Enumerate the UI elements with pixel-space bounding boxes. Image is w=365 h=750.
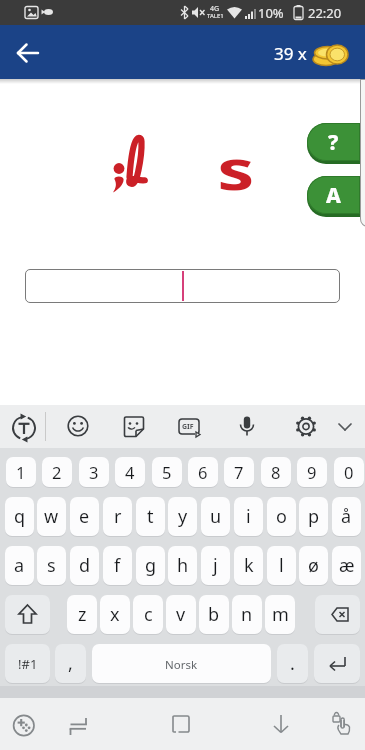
button[interactable]: 4 <box>115 457 145 487</box>
staticText: GIF <box>182 422 194 432</box>
button[interactable] <box>4 28 52 76</box>
button[interactable]: q <box>5 497 34 536</box>
button[interactable]: 6 <box>188 457 218 487</box>
button[interactable]: r <box>103 497 132 536</box>
staticText: 9 <box>307 461 317 483</box>
button[interactable]: å <box>332 497 361 536</box>
staticText: j <box>213 553 218 578</box>
button[interactable] <box>331 412 359 440</box>
staticText: 39 x <box>274 42 307 65</box>
button[interactable] <box>8 708 40 740</box>
staticText: p <box>308 504 320 529</box>
staticText: !#1 <box>18 655 38 673</box>
staticText: k <box>244 553 254 578</box>
staticText: n <box>241 602 253 627</box>
staticText: 22:20 <box>308 4 342 22</box>
staticText: f <box>114 553 121 578</box>
button[interactable]: ø <box>299 546 328 585</box>
button[interactable]: ? <box>307 123 360 161</box>
staticText: q <box>14 504 26 529</box>
button[interactable]: z <box>67 595 97 634</box>
staticText: 5 <box>162 461 172 483</box>
button[interactable]: v <box>166 595 196 634</box>
button[interactable]: c <box>133 595 163 634</box>
staticText: A <box>326 181 341 210</box>
button[interactable]: n <box>232 595 262 634</box>
button[interactable]: 9 <box>297 457 327 487</box>
button[interactable]: 2 <box>42 457 72 487</box>
button[interactable]: !#1 <box>5 644 50 683</box>
button[interactable]: . <box>277 644 308 683</box>
button[interactable]: i <box>234 497 263 536</box>
button[interactable]: p <box>299 497 328 536</box>
staticText: 3 <box>89 461 99 483</box>
staticText: . <box>290 651 295 676</box>
button[interactable]: d <box>70 546 99 585</box>
button[interactable]: , <box>55 644 86 683</box>
staticText: 7 <box>234 461 244 483</box>
button[interactable]: 7 <box>224 457 254 487</box>
staticText: å <box>341 504 352 529</box>
button[interactable] <box>165 708 197 740</box>
staticText: 10% <box>258 4 284 22</box>
staticText: u <box>210 504 222 529</box>
button[interactable] <box>92 644 271 683</box>
button[interactable]: æ <box>332 546 361 585</box>
button[interactable]: g <box>136 546 165 585</box>
button[interactable]: x <box>100 595 130 634</box>
button[interactable]: 8 <box>261 457 291 487</box>
staticText: h <box>177 553 189 578</box>
staticText: y <box>178 504 188 529</box>
button[interactable] <box>62 410 94 442</box>
button[interactable] <box>314 644 360 683</box>
button[interactable]: A <box>307 176 360 214</box>
button[interactable]: o <box>267 497 296 536</box>
staticText: ? <box>328 128 339 157</box>
staticText: c <box>144 602 153 627</box>
staticText: TALE1 <box>207 12 224 20</box>
button[interactable]: GIF <box>173 410 205 442</box>
button[interactable]: h <box>168 546 197 585</box>
button[interactable] <box>290 410 322 442</box>
button[interactable] <box>231 410 263 442</box>
button[interactable] <box>324 708 356 740</box>
staticText: 8 <box>271 461 281 483</box>
button[interactable]: w <box>37 497 66 536</box>
staticText: r <box>114 504 122 529</box>
staticText: 1 <box>16 461 26 483</box>
button[interactable]: 1 <box>6 457 36 487</box>
button[interactable] <box>265 708 297 740</box>
button[interactable] <box>6 410 38 442</box>
staticText: 2 <box>52 461 62 483</box>
button[interactable] <box>315 595 360 634</box>
button[interactable] <box>59 708 91 740</box>
staticText: 0 <box>344 461 354 483</box>
button[interactable]: a <box>5 546 34 585</box>
staticText: w <box>44 504 59 529</box>
button[interactable]: u <box>201 497 230 536</box>
button[interactable]: 3 <box>79 457 109 487</box>
button[interactable]: s <box>37 546 66 585</box>
button[interactable]: t <box>136 497 165 536</box>
staticText: m <box>272 602 289 627</box>
staticText: d <box>79 553 91 578</box>
staticText: e <box>79 504 90 529</box>
button[interactable]: e <box>70 497 99 536</box>
button[interactable]: j <box>201 546 230 585</box>
button[interactable]: f <box>103 546 132 585</box>
button[interactable] <box>25 269 340 303</box>
button[interactable]: l <box>267 546 296 585</box>
staticText: z <box>78 602 87 627</box>
button[interactable]: y <box>168 497 197 536</box>
button[interactable]: k <box>234 546 263 585</box>
staticText: t <box>147 504 154 529</box>
button[interactable]: m <box>265 595 295 634</box>
staticText: v <box>176 602 186 627</box>
button[interactable]: b <box>199 595 229 634</box>
staticText: 4 <box>125 461 135 483</box>
button[interactable] <box>5 595 50 634</box>
staticText: 4G <box>210 4 220 14</box>
button[interactable]: 5 <box>152 457 182 487</box>
button[interactable] <box>117 410 149 442</box>
button[interactable]: 0 <box>334 457 364 487</box>
